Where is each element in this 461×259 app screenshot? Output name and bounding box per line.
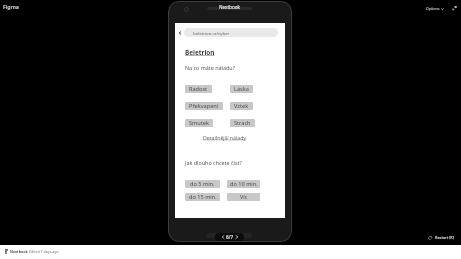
staticText: Beletrion [185,48,215,57]
button[interactable]: do 15 min. [185,193,220,201]
button[interactable]: Back [176,28,183,37]
button[interactable]: do 10 min. [227,180,260,188]
staticText: Láska [234,85,249,93]
button[interactable]: Radost [185,85,212,93]
staticText: Nextbook [219,4,240,10]
staticText: do 5 min. [190,180,215,188]
button[interactable]: Strach [230,119,255,127]
button[interactable]: beletrion.cz/vyber [184,28,278,37]
staticText: do 10 min. [230,180,258,188]
staticText: Nextbook [10,249,28,254]
staticText: Na co máte náladu? [185,64,235,71]
staticText: do 15 min. [189,193,217,201]
staticText: Radost [189,85,208,93]
staticText: beletrion.cz/vyber [193,30,230,36]
button[interactable]: Restart (R) [427,234,455,241]
staticText: Překvapení [189,102,219,110]
button[interactable]: Next [234,233,240,241]
button[interactable]: Víc [227,193,260,201]
staticText: 6/7 [226,234,234,240]
staticText: Jak dlouho chcete číst? [185,159,242,166]
staticText: Restart (R) [435,235,454,240]
button[interactable]: do 5 min. [185,180,220,188]
staticText: Víc [240,193,248,201]
staticText: Strach [234,119,251,127]
staticText: Edited 7 days ago [29,249,59,254]
staticText: Vztek [234,102,249,110]
button[interactable]: Present [450,4,458,12]
button[interactable]: Detailnější nálady [203,134,247,141]
button[interactable]: Smutek [185,119,213,127]
staticText: Smutek [189,119,209,127]
button[interactable]: Options [424,5,446,12]
button[interactable]: Překvapení [185,102,223,110]
button[interactable]: Previous [220,233,226,241]
button[interactable]: Vztek [230,102,253,110]
staticText: Options [426,6,440,11]
staticText: Figma [3,3,19,10]
button[interactable]: Láska [230,85,253,93]
